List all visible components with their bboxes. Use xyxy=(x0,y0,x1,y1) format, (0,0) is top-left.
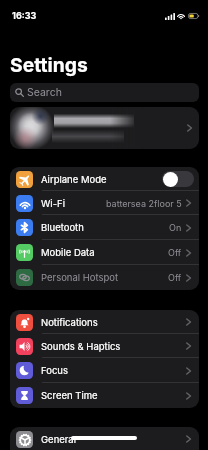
staticText: battersea 2floor 5 xyxy=(106,198,182,209)
staticText: Wi-Fi xyxy=(41,198,65,209)
staticText: Sounds & Haptics xyxy=(41,341,121,352)
button[interactable]: Personal Hotspot xyxy=(10,265,199,290)
staticText: Bluetooth xyxy=(41,222,84,233)
button[interactable]: Focus xyxy=(10,358,199,383)
staticText: Search xyxy=(27,86,62,99)
button[interactable]: Mobile Data xyxy=(10,240,199,265)
staticText: Airplane Mode xyxy=(41,174,107,185)
staticText: Off xyxy=(168,247,182,258)
staticText: On xyxy=(169,222,182,233)
button[interactable]: Screen Time xyxy=(10,383,199,408)
staticText: Settings xyxy=(10,53,88,76)
staticText: Focus xyxy=(41,365,68,376)
staticText: Mobile Data xyxy=(41,247,95,258)
button[interactable] xyxy=(10,107,199,149)
button[interactable]: Notifications xyxy=(10,310,199,334)
staticText: Off xyxy=(168,272,182,283)
button[interactable]: Wi-Fi xyxy=(10,191,199,215)
staticText: Screen Time xyxy=(41,390,98,401)
staticText: General xyxy=(41,434,76,445)
staticText: Notifications xyxy=(41,317,98,328)
button[interactable]: General xyxy=(10,427,199,450)
button[interactable]: Airplane Mode toggle xyxy=(162,171,194,187)
button[interactable]: Airplane Mode xyxy=(10,167,199,191)
staticText: 16:33 xyxy=(12,10,37,21)
button[interactable]: Search xyxy=(10,83,199,102)
button[interactable]: Bluetooth xyxy=(10,215,199,240)
button[interactable]: Sounds & Haptics xyxy=(10,334,199,358)
staticText: Personal Hotspot xyxy=(41,272,119,283)
